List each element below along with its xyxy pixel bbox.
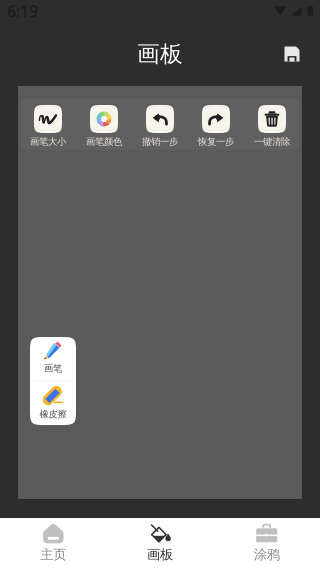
staticText: 撤销一步: [142, 136, 178, 147]
button[interactable]: 撤销一步: [132, 98, 188, 150]
button[interactable]: 涂鸦: [213, 518, 320, 568]
button[interactable]: 画笔大小: [20, 98, 76, 150]
staticText: 恢复一步: [198, 136, 234, 147]
staticText: 一键清除: [254, 136, 290, 147]
button[interactable]: 画板: [107, 518, 213, 568]
staticText: 画板: [137, 40, 183, 68]
button[interactable]: 画笔颜色: [76, 98, 132, 150]
button[interactable]: 一键清除: [244, 98, 300, 150]
staticText: 涂鸦: [254, 546, 280, 563]
staticText: 主页: [40, 546, 66, 563]
staticText: 画笔大小: [30, 136, 66, 147]
button[interactable]: 主页: [0, 518, 107, 568]
staticText: 画笔颜色: [86, 136, 122, 147]
staticText: 画板: [147, 546, 173, 563]
staticText: 画笔: [44, 363, 62, 374]
button[interactable]: 橡皮擦: [30, 381, 76, 426]
staticText: 橡皮擦: [39, 408, 66, 420]
button[interactable]: 保存: [272, 34, 312, 74]
button[interactable]: 画笔: [30, 336, 76, 381]
staticText: 6:19: [7, 0, 38, 22]
button[interactable]: 恢复一步: [188, 98, 244, 150]
